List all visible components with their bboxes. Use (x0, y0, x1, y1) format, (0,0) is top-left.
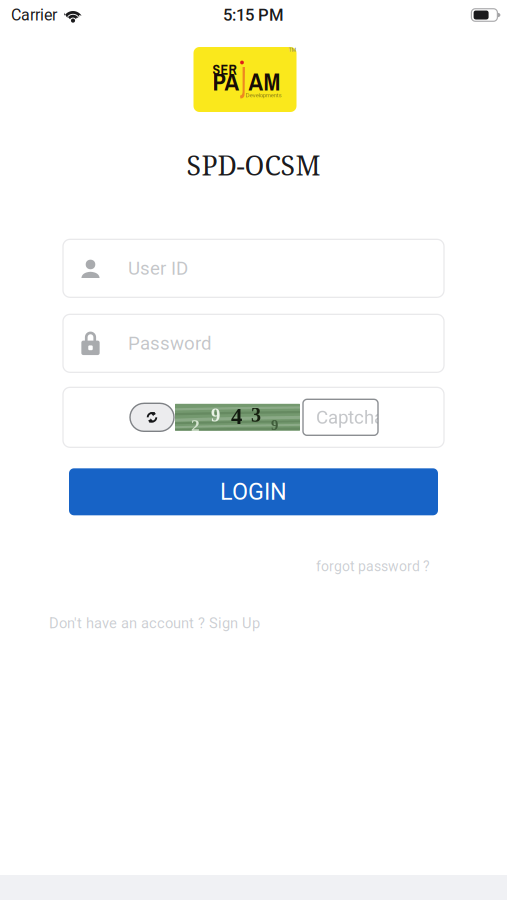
staticText: TM (288, 47, 296, 53)
staticText: 4 (231, 404, 242, 429)
button[interactable]: Password (63, 314, 444, 372)
staticText: 9 (271, 417, 278, 433)
staticText: Developments (245, 91, 281, 99)
staticText: SER (212, 60, 236, 79)
staticText: Don't have an account ? Sign Up (49, 615, 260, 632)
staticText: 9 (211, 405, 220, 425)
staticText: PA (212, 65, 239, 98)
staticText: 3 (251, 404, 261, 426)
button[interactable]: Don't have an account ? Sign Up (49, 615, 260, 632)
staticText: Captcha (316, 406, 384, 428)
staticText: 2 (191, 416, 200, 435)
staticText: 5:15 PM (223, 5, 284, 25)
staticText: User ID (128, 257, 188, 279)
staticText: Password (128, 332, 212, 354)
button[interactable]: forgot password ? (316, 558, 430, 575)
staticText: AM (248, 65, 280, 98)
staticText: forgot password ? (316, 558, 430, 575)
button[interactable]: LOGIN (69, 468, 438, 515)
staticText: SPD-OCSM (186, 147, 320, 183)
button[interactable]: User ID (63, 239, 444, 297)
staticText: LOGIN (220, 478, 287, 505)
button[interactable]: Refresh captcha (130, 403, 174, 431)
staticText: Carrier (11, 6, 57, 24)
